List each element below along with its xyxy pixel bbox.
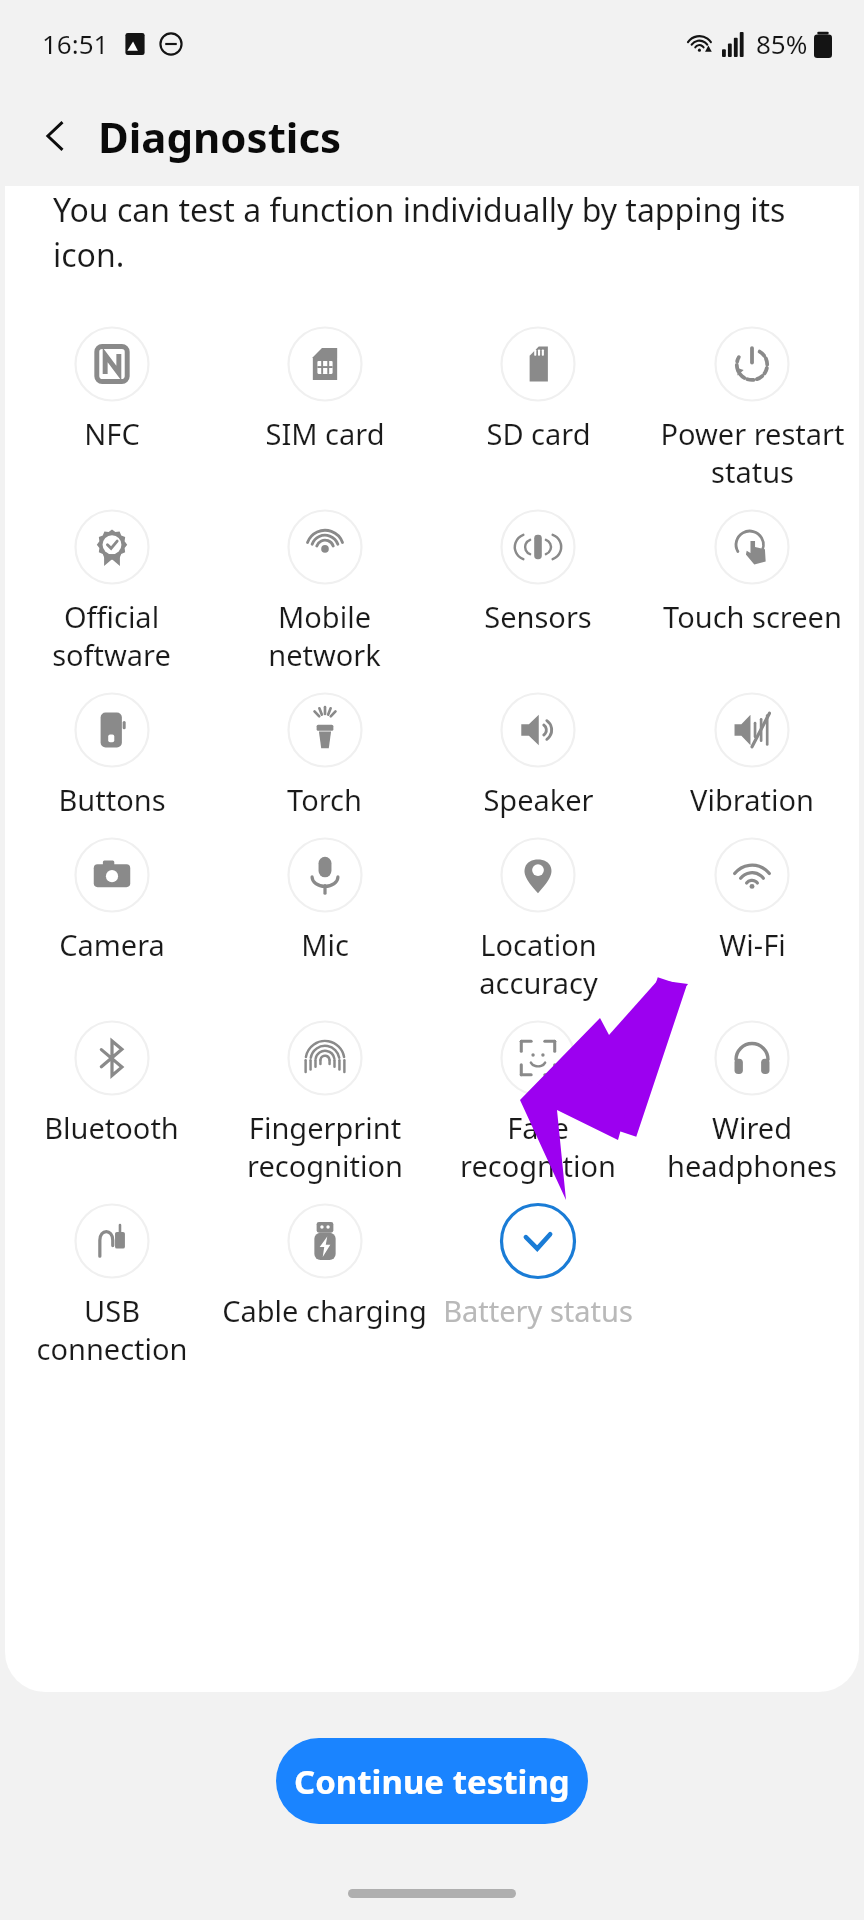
staticText: Battery status: [443, 1291, 633, 1330]
button[interactable]: Face recognition: [431, 1016, 645, 1185]
button[interactable]: Mobile network: [218, 505, 431, 674]
staticText: Continue testing: [294, 1759, 570, 1804]
staticText: Face recognition: [460, 1108, 616, 1185]
staticText: 16:51: [42, 26, 109, 61]
button[interactable]: Continue testing: [276, 1738, 588, 1824]
button[interactable]: Vibration: [645, 688, 859, 819]
button[interactable]: Torch: [218, 688, 431, 819]
staticText: You can test a function individually by …: [53, 188, 786, 276]
staticText: SD card: [486, 414, 591, 453]
staticText: Official software: [52, 597, 171, 674]
staticText: Touch screen: [663, 597, 842, 636]
staticText: Power restart status: [660, 414, 845, 491]
button[interactable]: Battery status: [431, 1199, 645, 1330]
button[interactable]: Fingerprint recognition: [218, 1016, 431, 1185]
staticText: NFC: [84, 414, 140, 453]
button[interactable]: Back: [28, 108, 84, 164]
staticText: Diagnostics: [98, 108, 342, 165]
staticText: Mobile network: [218, 597, 431, 674]
staticText: Bluetooth: [44, 1108, 179, 1147]
button[interactable]: Speaker: [431, 688, 645, 819]
button[interactable]: NFC: [5, 322, 218, 453]
button[interactable]: Bluetooth: [5, 1016, 218, 1147]
staticText: Torch: [287, 780, 362, 819]
staticText: Fingerprint recognition: [247, 1108, 403, 1185]
staticText: Vibration: [690, 780, 814, 819]
button[interactable]: USB connection: [5, 1199, 218, 1368]
button[interactable]: Official software: [5, 505, 218, 674]
staticText: Speaker: [483, 780, 594, 819]
button[interactable]: Wired headphones: [645, 1016, 859, 1185]
button[interactable]: Camera: [5, 833, 218, 964]
button[interactable]: SD card: [431, 322, 645, 453]
staticText: SIM card: [265, 414, 385, 453]
staticText: 85%: [756, 26, 808, 61]
staticText: Mic: [301, 925, 349, 964]
staticText: Wi-Fi: [719, 925, 786, 964]
button[interactable]: SIM card: [218, 322, 431, 453]
staticText: Location accuracy: [479, 925, 598, 1002]
staticText: Buttons: [58, 780, 166, 819]
staticText: USB connection: [36, 1291, 188, 1368]
button[interactable]: Sensors: [431, 505, 645, 636]
staticText: Camera: [59, 925, 165, 964]
staticText: Wired headphones: [667, 1108, 837, 1185]
staticText: Sensors: [484, 597, 592, 636]
button[interactable]: Mic: [218, 833, 431, 964]
button[interactable]: Touch screen: [645, 505, 859, 636]
button[interactable]: Location accuracy: [431, 833, 645, 1002]
button[interactable]: Power restart status: [645, 322, 859, 491]
button[interactable]: Wi-Fi: [645, 833, 859, 964]
button[interactable]: Cable charging: [218, 1199, 431, 1330]
button[interactable]: Buttons: [5, 688, 218, 819]
staticText: Cable charging: [222, 1291, 427, 1330]
